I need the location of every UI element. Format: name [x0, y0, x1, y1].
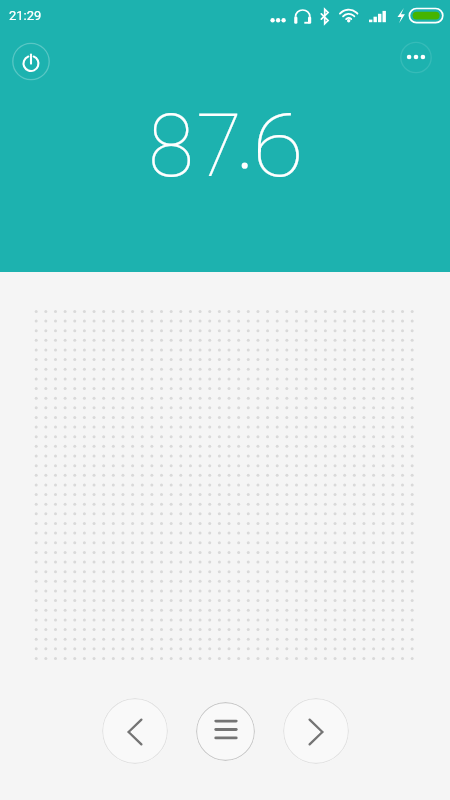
staticText: 6 — [252, 95, 304, 197]
staticText: 7 — [196, 95, 242, 197]
button[interactable]: Previous station — [102, 698, 168, 764]
button[interactable]: Station list — [196, 702, 255, 761]
button[interactable]: Power — [9, 39, 53, 83]
button[interactable]: More options — [397, 37, 437, 77]
staticText: 8 — [148, 95, 194, 197]
staticText: 21:29 — [9, 8, 42, 23]
button[interactable]: Next station — [283, 698, 349, 764]
